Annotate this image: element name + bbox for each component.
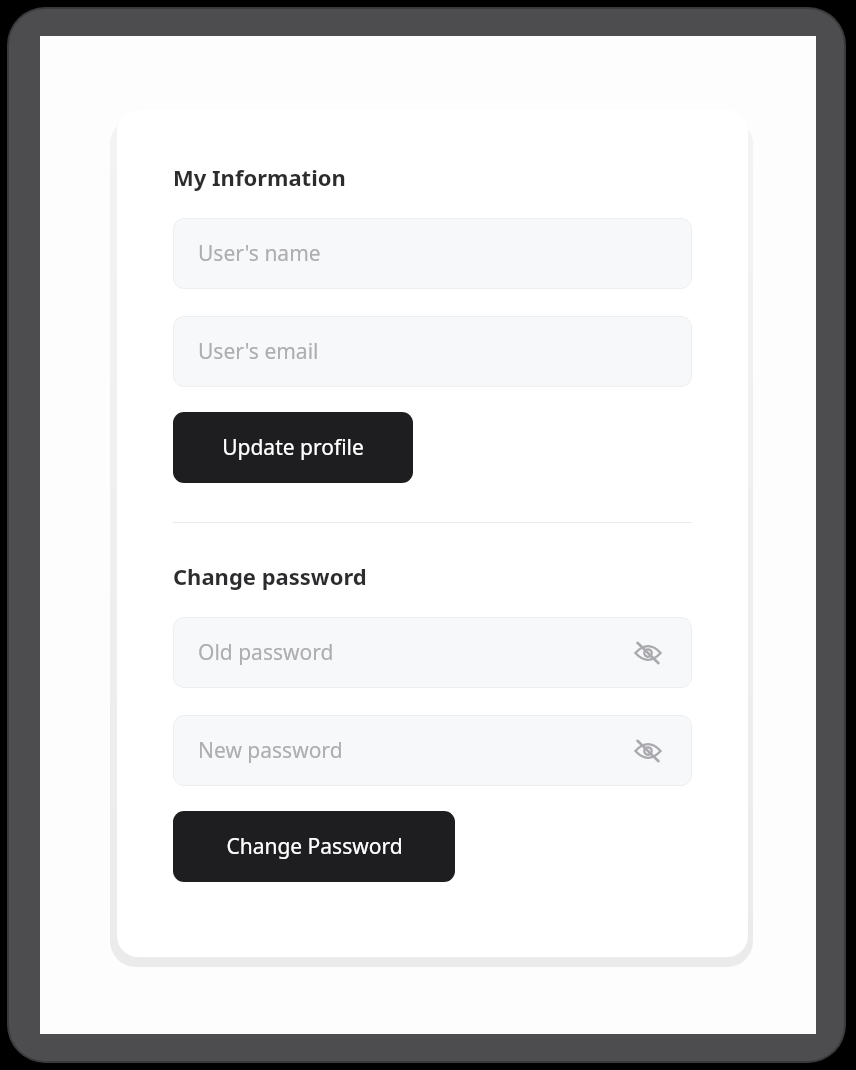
button[interactable]: User's name — [173, 218, 692, 289]
staticText: Change password — [173, 561, 367, 591]
staticText: New password — [198, 736, 629, 765]
staticText: User's email — [198, 337, 667, 366]
button[interactable]: User's email — [173, 316, 692, 387]
button[interactable]: Old password — [173, 617, 692, 688]
button[interactable]: Show password — [629, 732, 667, 770]
staticText: My Information — [173, 162, 346, 192]
staticText: Old password — [198, 638, 629, 667]
button[interactable]: New password — [173, 715, 692, 786]
button[interactable]: Change Password — [173, 811, 455, 882]
button[interactable]: Show password — [629, 634, 667, 672]
staticText: User's name — [198, 239, 667, 268]
staticText: Update profile — [222, 433, 364, 462]
button[interactable]: Update profile — [173, 412, 413, 483]
staticText: Change Password — [226, 832, 403, 861]
